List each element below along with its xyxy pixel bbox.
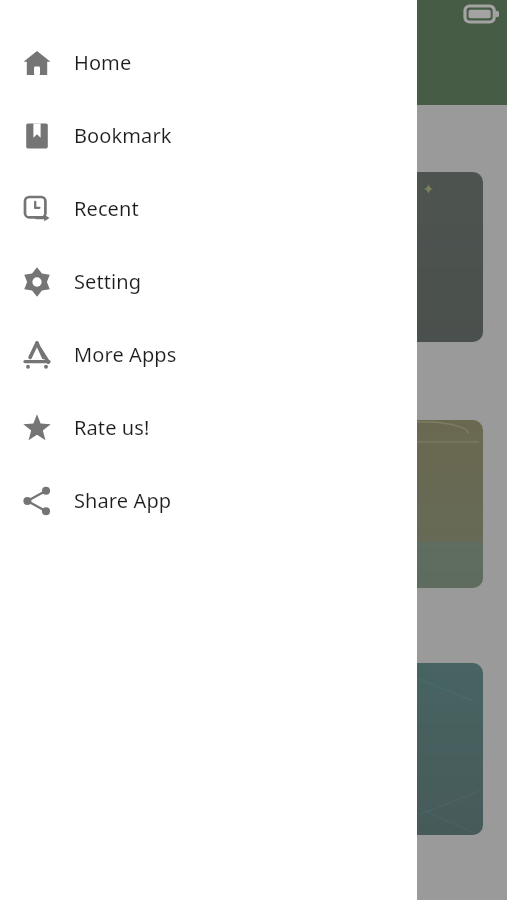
- staticText: More Apps: [74, 341, 177, 368]
- button[interactable]: Wallpaper: [273, 172, 483, 342]
- button[interactable]: Rate us!: [0, 391, 417, 464]
- button[interactable]: Wallpaper: [273, 663, 483, 835]
- button[interactable]: Setting: [0, 245, 417, 318]
- button[interactable]: Wallpaper: [273, 420, 483, 588]
- button[interactable]: Bookmark: [0, 99, 417, 172]
- button[interactable]: More Apps: [0, 318, 417, 391]
- staticText: Share App: [74, 487, 172, 514]
- button[interactable]: Recent: [0, 172, 417, 245]
- staticText: Recent: [74, 195, 139, 222]
- button[interactable]: Home: [0, 26, 417, 99]
- staticText: Bookmark: [74, 122, 172, 149]
- staticText: Home: [74, 49, 132, 76]
- staticText: Setting: [74, 268, 142, 295]
- button[interactable]: Share App: [0, 464, 417, 537]
- staticText: Rate us!: [74, 414, 150, 441]
